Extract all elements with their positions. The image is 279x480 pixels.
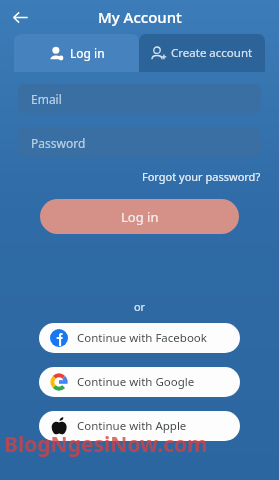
staticText: My Account bbox=[98, 7, 182, 27]
button[interactable]: Forgot your password? bbox=[140, 167, 263, 186]
staticText: Email bbox=[31, 91, 62, 107]
staticText: Continue with Google bbox=[77, 374, 195, 390]
button[interactable]: Continue with Google bbox=[39, 367, 240, 397]
staticText: Forgot your password? bbox=[142, 169, 261, 184]
staticText: BlogNgesiNow.com bbox=[4, 430, 279, 459]
staticText: Password bbox=[31, 135, 86, 151]
button[interactable]: Log in bbox=[40, 199, 239, 234]
button[interactable]: Create account bbox=[139, 34, 265, 72]
staticText: Log in bbox=[121, 208, 159, 226]
staticText: Log in bbox=[70, 45, 105, 61]
button[interactable]: Log in bbox=[14, 34, 139, 72]
button[interactable]: Email bbox=[18, 84, 261, 113]
button[interactable]: Continue with Facebook bbox=[39, 323, 240, 353]
button[interactable]: Password bbox=[18, 128, 261, 157]
staticText: or bbox=[0, 299, 279, 314]
button[interactable]: Continue with Apple bbox=[39, 411, 240, 441]
staticText: Continue with Facebook bbox=[77, 330, 207, 346]
button[interactable]: Back bbox=[5, 2, 35, 32]
staticText: Continue with Apple bbox=[77, 418, 187, 434]
staticText: Create account bbox=[171, 45, 253, 61]
